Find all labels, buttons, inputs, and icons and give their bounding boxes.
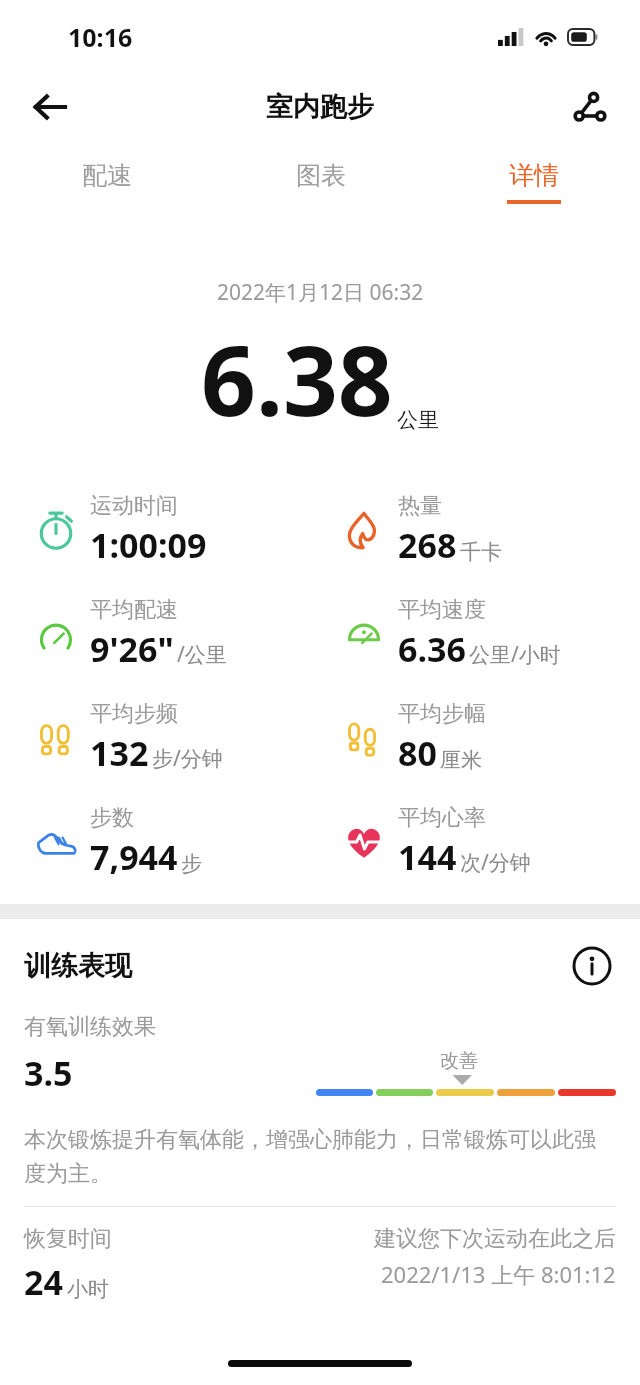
staticText: 平均速度: [398, 596, 486, 624]
staticText: 10:16: [68, 20, 133, 54]
staticText: 恢复时间: [24, 1225, 112, 1253]
staticText: 平均步频: [90, 700, 178, 728]
button[interactable]: Share: [562, 79, 618, 135]
button[interactable]: 步数: [34, 804, 320, 880]
staticText: 训练表现: [24, 949, 132, 983]
staticText: 建议您下次运动在此之后: [374, 1225, 616, 1253]
button[interactable]: Back: [22, 79, 78, 135]
staticText: 平均心率: [398, 804, 486, 832]
button[interactable]: 热量: [342, 492, 640, 568]
button[interactable]: 平均心率: [342, 804, 640, 880]
button[interactable]: 运动时间: [34, 492, 320, 568]
staticText: 小时: [67, 1276, 109, 1302]
staticText: 配速: [82, 160, 132, 191]
staticText: 厘米: [440, 747, 482, 773]
staticText: 室内跑步: [266, 90, 374, 124]
staticText: /公里: [177, 640, 227, 669]
staticText: 2022/1/13 上午 8:01:12: [381, 1259, 616, 1289]
staticText: 步/分钟: [152, 744, 223, 773]
button[interactable]: 平均步幅: [342, 700, 640, 776]
staticText: 平均步幅: [398, 700, 486, 728]
staticText: 268: [398, 522, 457, 568]
staticText: 6.38: [201, 313, 393, 444]
button[interactable]: 图表: [214, 144, 427, 220]
button[interactable]: 平均步频: [34, 700, 320, 776]
staticText: 1:00:09: [90, 522, 207, 568]
staticText: 图表: [296, 160, 346, 191]
staticText: 步数: [90, 804, 134, 832]
staticText: 公里: [397, 407, 439, 433]
staticText: 2022年1月12日 06:32: [217, 278, 424, 307]
staticText: 运动时间: [90, 492, 178, 520]
staticText: 详情: [509, 160, 559, 191]
staticText: 公里/小时: [469, 640, 561, 669]
staticText: 千卡: [460, 539, 502, 565]
button[interactable]: 详情: [427, 144, 640, 220]
staticText: 平均配速: [90, 596, 178, 624]
button[interactable]: 平均配速: [34, 596, 320, 672]
staticText: 132: [90, 730, 149, 776]
staticText: 9'26": [90, 626, 174, 672]
staticText: 有氧训练效果: [24, 1013, 156, 1041]
staticText: 7,944: [90, 834, 178, 880]
button[interactable]: 配速: [0, 144, 214, 220]
button[interactable]: 平均速度: [342, 596, 640, 672]
staticText: 改善: [440, 1049, 478, 1073]
button[interactable]: Info: [568, 942, 616, 990]
staticText: 3.5: [24, 1050, 73, 1096]
staticText: 步: [181, 851, 202, 877]
staticText: 24: [24, 1259, 63, 1305]
staticText: 80: [398, 730, 437, 776]
staticText: 热量: [398, 492, 442, 520]
staticText: 次/分钟: [460, 848, 531, 877]
staticText: 144: [398, 834, 457, 880]
staticText: 6.36: [398, 626, 466, 672]
staticText: 本次锻炼提升有氧体能，增强心肺能力，日常锻炼可以此强度为主。: [24, 1126, 616, 1188]
